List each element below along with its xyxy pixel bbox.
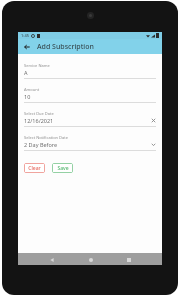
button[interactable]: Recent apps: [123, 254, 134, 265]
staticText: Service Name: [24, 63, 50, 68]
button[interactable]: Back: [21, 41, 32, 52]
staticText: Save: [57, 165, 69, 172]
staticText: 2 Day Before: [24, 141, 151, 148]
button[interactable]: Home: [85, 254, 96, 265]
staticText: Select Notification Date: [24, 135, 68, 140]
staticText: Add Subscription: [37, 42, 94, 52]
staticText: Clear: [28, 165, 41, 172]
button[interactable]: Select Due Date: [24, 111, 156, 127]
staticText: 10: [24, 93, 156, 100]
button[interactable]: Clear: [24, 163, 45, 173]
button[interactable]: Select Notification Date: [24, 135, 156, 151]
staticText: 12/16/2021: [24, 117, 151, 124]
staticText: A: [24, 69, 156, 76]
staticText: Select Due Date: [24, 111, 54, 116]
button[interactable]: Amount: [24, 87, 156, 103]
staticText: 1:45: [21, 33, 29, 38]
button[interactable]: Back: [46, 254, 57, 265]
button[interactable]: Service Name: [24, 63, 156, 79]
staticText: Amount: [24, 87, 40, 92]
button[interactable]: Save: [52, 163, 73, 173]
